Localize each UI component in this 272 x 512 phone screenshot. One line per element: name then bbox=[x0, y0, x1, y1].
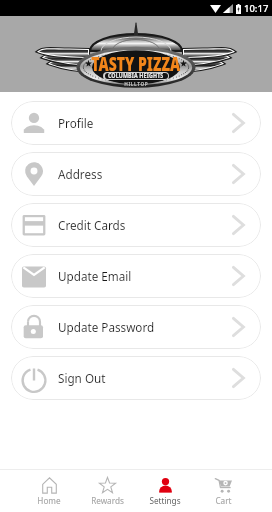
button[interactable]: Cart bbox=[194, 470, 252, 512]
staticText: Profile bbox=[58, 115, 94, 131]
staticText: Cart bbox=[215, 495, 232, 506]
button[interactable]: Address bbox=[11, 152, 261, 196]
staticText: COLUMBIA HEIGHTS bbox=[108, 71, 164, 80]
button[interactable]: Credit Cards bbox=[11, 203, 261, 247]
staticText: Update Password bbox=[58, 319, 155, 335]
staticText: HILLTOP bbox=[124, 80, 149, 88]
staticText: Settings bbox=[149, 495, 181, 506]
staticText: Rewards bbox=[91, 495, 124, 506]
staticText: Credit Cards bbox=[58, 217, 126, 233]
button[interactable]: Profile bbox=[11, 101, 261, 145]
staticText: 10:17 bbox=[244, 2, 269, 15]
staticText: Home bbox=[37, 495, 61, 506]
staticText: TASTY PIZZA bbox=[91, 50, 181, 77]
staticText: Sign Out bbox=[58, 370, 106, 386]
button[interactable]: Update Email bbox=[11, 254, 261, 298]
button[interactable]: Rewards bbox=[78, 470, 136, 512]
staticText: Update Email bbox=[58, 268, 132, 284]
button[interactable]: Sign Out bbox=[11, 356, 261, 400]
button[interactable]: Home bbox=[20, 470, 78, 512]
staticText: Address bbox=[58, 166, 103, 182]
button[interactable]: Settings bbox=[136, 470, 194, 512]
button[interactable]: Update Password bbox=[11, 305, 261, 349]
